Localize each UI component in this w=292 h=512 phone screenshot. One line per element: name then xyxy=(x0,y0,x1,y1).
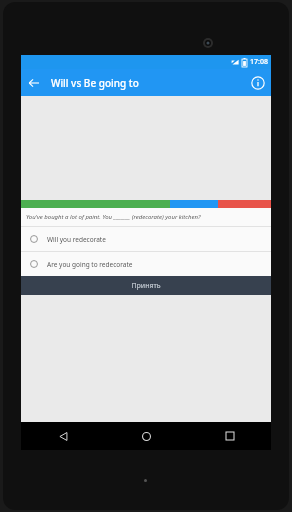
staticText: Are you going to redecorate xyxy=(47,260,133,269)
button[interactable]: Are you going to redecorate xyxy=(21,252,271,276)
button[interactable]: Info xyxy=(245,70,271,96)
staticText: Will vs Be going to xyxy=(51,76,139,90)
button[interactable]: Will you redecorate xyxy=(21,227,271,251)
button[interactable]: Принять xyxy=(21,276,271,295)
button[interactable]: Back xyxy=(21,70,47,96)
button[interactable]: Home xyxy=(105,422,188,450)
button[interactable]: Recent apps xyxy=(188,422,271,450)
staticText: You've bought a lot of paint. You ______… xyxy=(26,213,201,221)
staticText: 17:08 xyxy=(250,57,268,67)
staticText: Принять xyxy=(131,281,161,291)
staticText: Will you redecorate xyxy=(47,235,106,244)
button[interactable]: Back xyxy=(21,422,105,450)
